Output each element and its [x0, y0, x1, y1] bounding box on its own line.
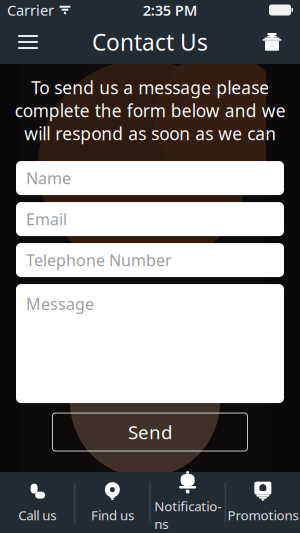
staticText: Notifications	[154, 497, 221, 533]
staticText: Telephone Number	[26, 249, 172, 271]
staticText: Send	[128, 420, 172, 444]
staticText: Contact Us	[92, 27, 208, 57]
staticText: Find us	[91, 506, 134, 524]
button[interactable]: Call us	[0, 472, 74, 533]
staticText: To send us a message please complete the…	[14, 76, 285, 145]
staticText: 2:35 PM	[143, 0, 198, 20]
button[interactable]: Promotions	[226, 472, 300, 533]
staticText: Email	[26, 208, 67, 230]
button[interactable]: Find us	[75, 472, 149, 533]
button[interactable]: Home	[250, 20, 294, 64]
button[interactable]: Notifications	[150, 472, 225, 533]
button[interactable]: Send	[52, 413, 247, 451]
staticText: Name	[26, 167, 71, 189]
button[interactable]: Menu	[6, 20, 50, 64]
staticText: Promotions	[227, 506, 298, 524]
staticText: Message	[26, 293, 94, 314]
staticText: Carrier	[7, 0, 54, 20]
staticText: Call us	[18, 506, 56, 524]
